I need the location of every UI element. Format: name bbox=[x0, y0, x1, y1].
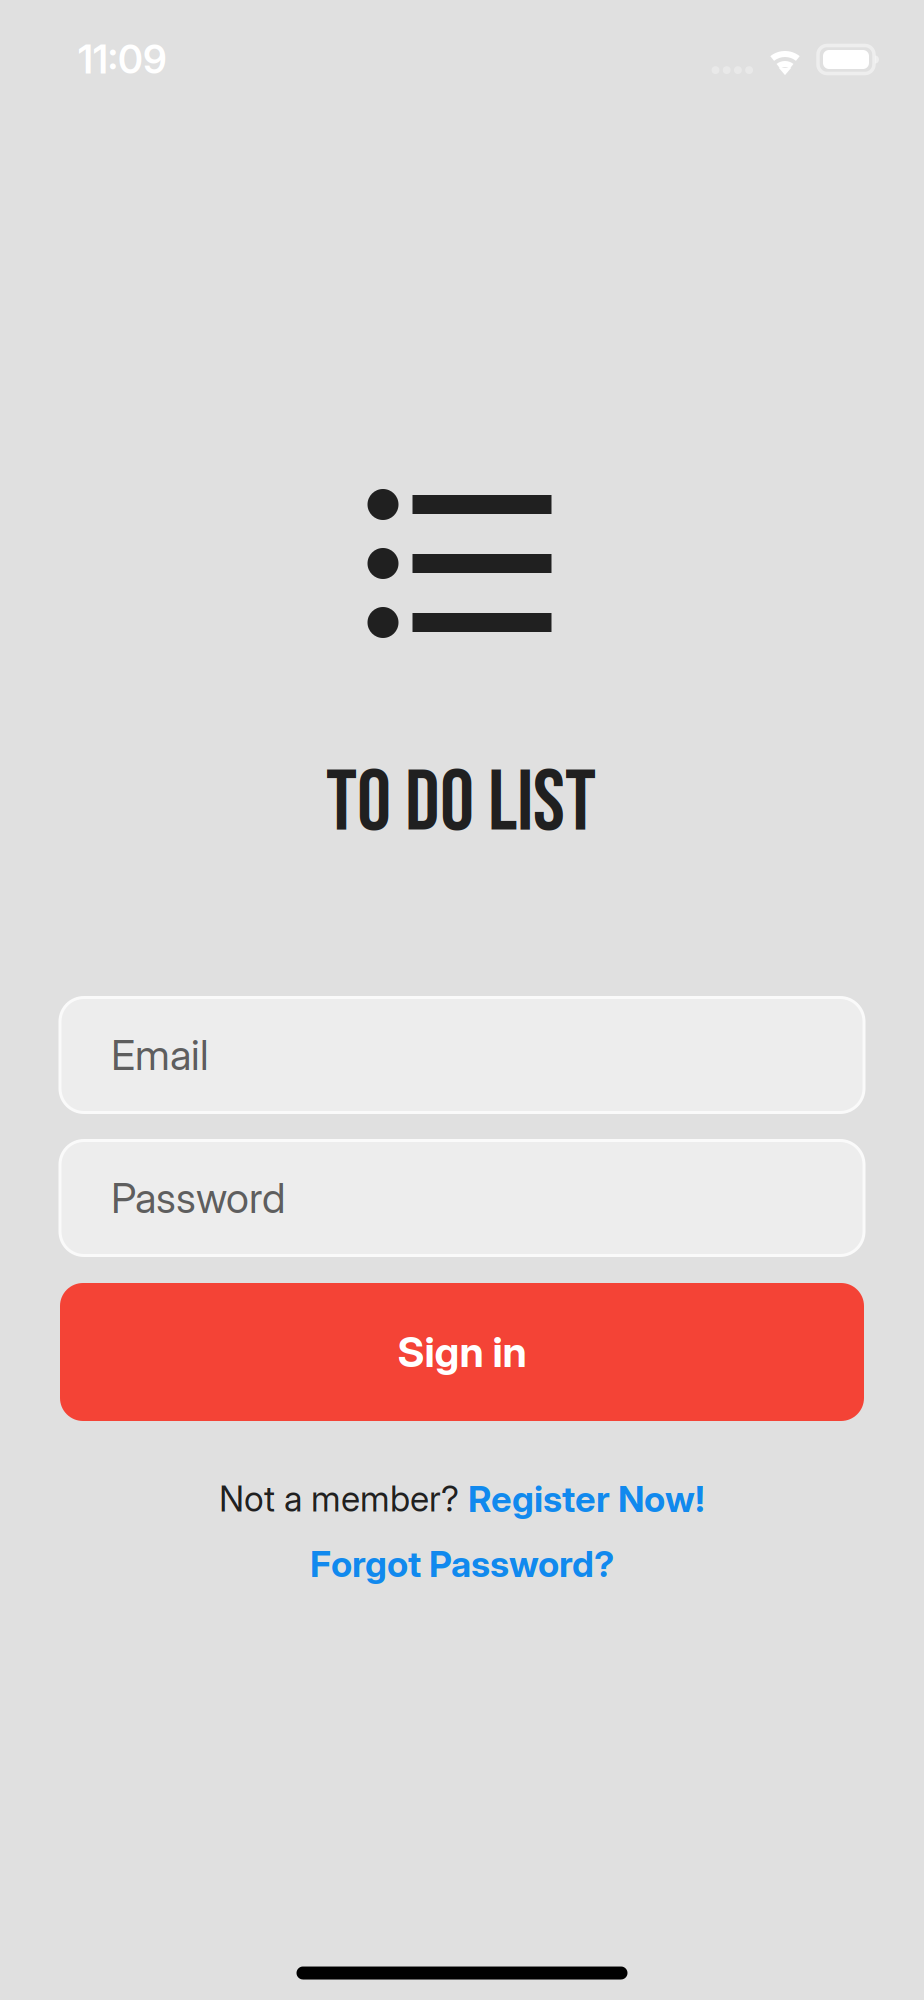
staticText: Not a member? bbox=[219, 1478, 459, 1520]
staticText: Sign in bbox=[397, 1327, 526, 1377]
button[interactable]: Register Now! bbox=[468, 1477, 705, 1521]
button[interactable]: Forgot Password? bbox=[310, 1542, 614, 1586]
staticText: Forgot Password? bbox=[310, 1542, 614, 1586]
staticText: TO DO LIST bbox=[326, 753, 596, 855]
button[interactable]: Sign in bbox=[60, 1283, 864, 1421]
staticText: Email bbox=[111, 1030, 209, 1080]
staticText: Register Now! bbox=[468, 1477, 705, 1521]
staticText: 11:09 bbox=[78, 36, 167, 83]
staticText: Password bbox=[111, 1173, 285, 1223]
